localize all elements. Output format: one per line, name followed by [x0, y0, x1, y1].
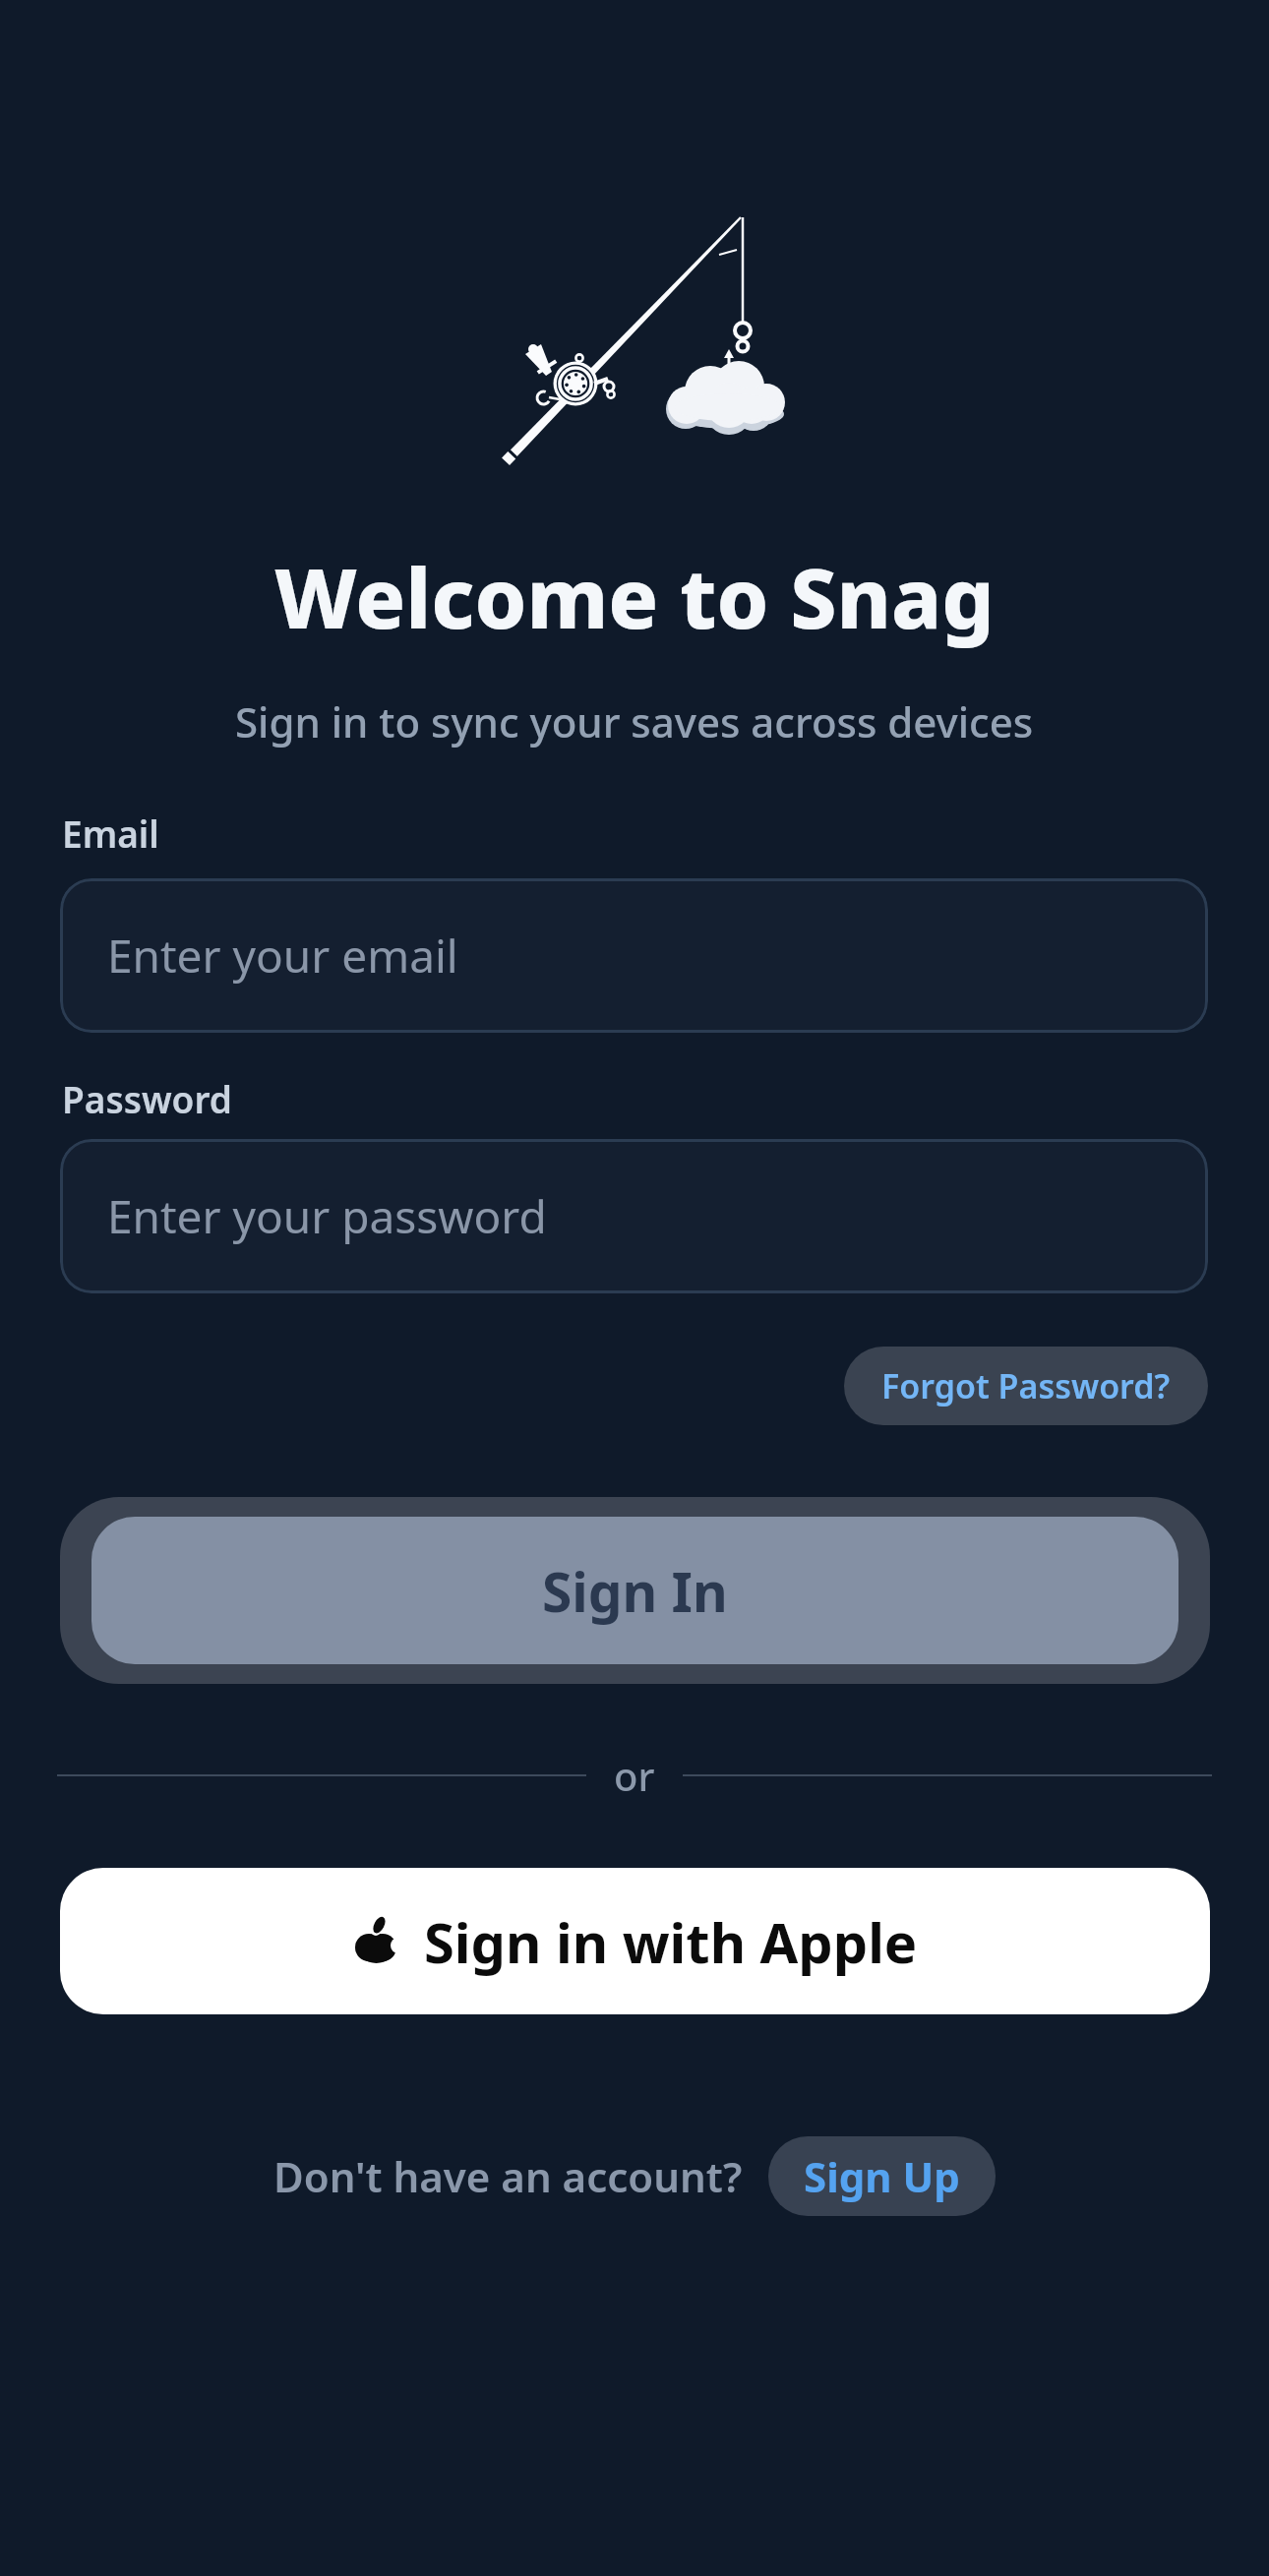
- button[interactable]: Forgot Password?: [844, 1347, 1208, 1425]
- button[interactable]: Enter your password: [60, 1139, 1208, 1293]
- staticText: Forgot Password?: [881, 1363, 1171, 1408]
- staticText: Password: [62, 1074, 232, 1123]
- staticText: Email: [62, 809, 159, 858]
- staticText: Sign in with Apple: [424, 1904, 918, 1979]
- staticText: Sign Up: [804, 2148, 960, 2204]
- button[interactable]: Enter your email: [60, 878, 1208, 1033]
- staticText: Enter your email: [107, 925, 458, 987]
- staticText: Enter your password: [107, 1185, 547, 1247]
- button[interactable]: Sign In: [60, 1497, 1210, 1684]
- staticText: or: [614, 1749, 655, 1802]
- staticText: Welcome to Snag: [274, 540, 995, 652]
- button[interactable]: Sign in with Apple: [60, 1868, 1210, 2014]
- staticText: Don't have an account?: [273, 2148, 743, 2204]
- staticText: Sign in to sync your saves across device…: [235, 693, 1034, 749]
- staticText: Sign In: [542, 1554, 728, 1628]
- button[interactable]: Sign Up: [768, 2136, 996, 2216]
